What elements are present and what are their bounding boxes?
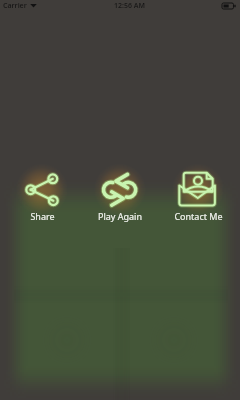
staticText: Carrier (3, 1, 27, 11)
staticText: Share (30, 210, 55, 222)
staticText: Contact Me (174, 210, 223, 222)
button[interactable]: Contact Me (162, 160, 234, 222)
staticText: 12:56 AM (114, 1, 145, 11)
button[interactable]: Share (6, 160, 78, 222)
staticText: Play Again (98, 210, 142, 222)
button[interactable]: Play Again (84, 160, 156, 222)
